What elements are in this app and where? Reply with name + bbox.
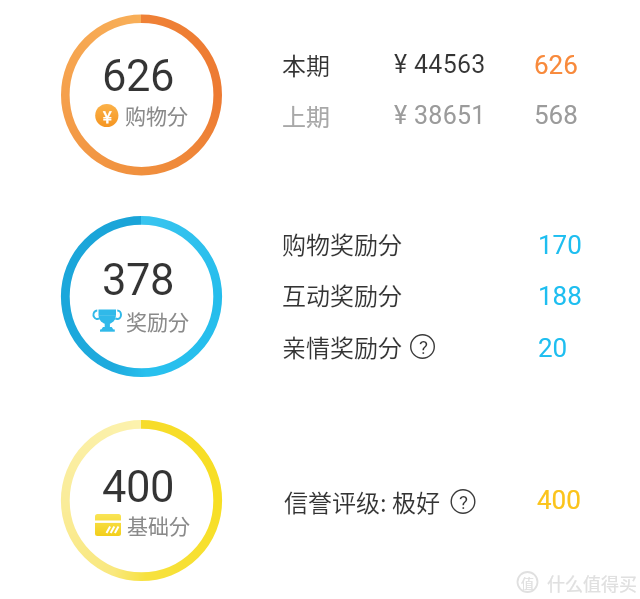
staticText: ¥ <box>103 105 112 127</box>
staticText: ¥ 38651 <box>394 101 486 130</box>
button[interactable]: ? <box>408 326 438 368</box>
staticText: ¥ 44563 <box>394 50 486 79</box>
staticText: 什么值得买 <box>547 570 637 596</box>
staticText: 本期 <box>282 47 330 82</box>
staticText: 信誉评级: 极好 <box>284 484 441 519</box>
staticText: 购物分 <box>125 100 188 130</box>
staticText: 400 <box>537 485 581 515</box>
staticText: 170 <box>538 230 582 260</box>
staticText: ? <box>419 336 428 358</box>
staticText: 亲情奖励分 <box>282 329 402 364</box>
staticText: 值 <box>521 573 535 592</box>
staticText: 400 <box>102 462 174 513</box>
staticText: 626 <box>102 51 174 102</box>
staticText: 626 <box>534 50 578 80</box>
button[interactable]: ? <box>448 481 478 523</box>
staticText: 20 <box>538 333 568 363</box>
staticText: 上期 <box>282 98 330 133</box>
staticText: 378 <box>102 255 174 306</box>
staticText: 奖励分 <box>126 306 189 336</box>
staticText: 购物奖励分 <box>282 226 402 261</box>
staticText: 互动奖励分 <box>282 277 402 312</box>
staticText: 基础分 <box>127 510 190 540</box>
staticText: 188 <box>538 281 582 311</box>
staticText: 568 <box>534 100 578 130</box>
staticText: ? <box>459 491 468 513</box>
